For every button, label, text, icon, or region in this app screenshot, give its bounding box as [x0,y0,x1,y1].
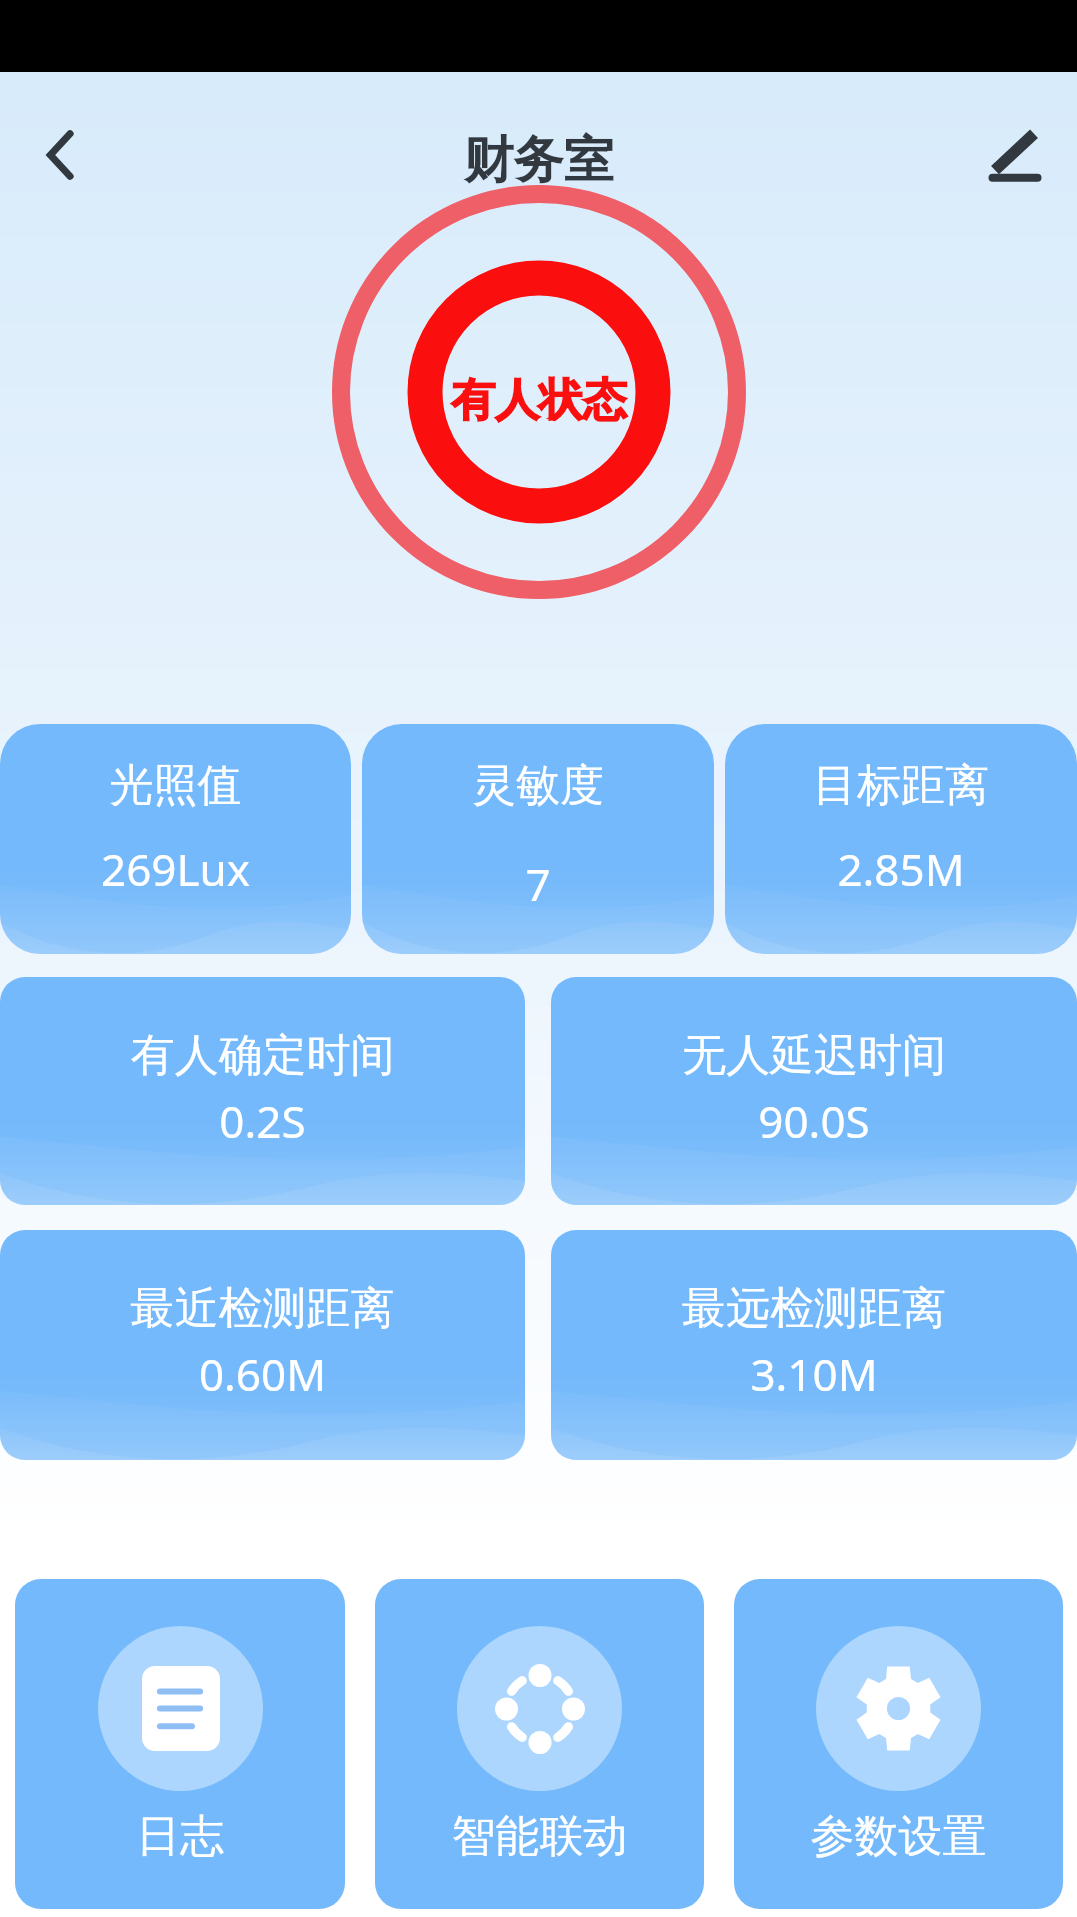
staticText: 7 [362,854,714,914]
staticText: 灵敏度 [362,758,714,813]
staticText: 目标距离 [725,758,1077,813]
staticText: 2.85M [725,839,1077,899]
button[interactable]: 光照值 [0,724,351,954]
staticText: 0.60M [0,1344,525,1404]
staticText: 智能联动 [375,1809,704,1864]
staticText: 财务室 [0,129,1077,192]
button[interactable]: 无人延迟时间 [551,977,1077,1205]
button[interactable]: 参数设置 [734,1579,1063,1909]
staticText: 3.10M [551,1344,1077,1404]
staticText: 参数设置 [734,1809,1063,1864]
button[interactable]: Edit [977,112,1053,188]
staticText: 光照值 [0,758,351,813]
button[interactable]: 目标距离 [725,724,1077,954]
staticText: 269Lux [0,839,351,899]
button[interactable]: 有人状态 [327,180,751,604]
staticText: 最远检测距离 [551,1281,1077,1336]
button[interactable]: 灵敏度 [362,724,714,954]
button[interactable]: 日志 [15,1579,345,1909]
staticText: 0.2S [0,1091,525,1151]
button[interactable]: 最近检测距离 [0,1230,525,1460]
staticText: 最近检测距离 [0,1281,525,1336]
staticText: 90.0S [551,1091,1077,1151]
staticText: 无人延迟时间 [551,1028,1077,1083]
button[interactable]: 智能联动 [375,1579,704,1909]
staticText: 日志 [15,1809,345,1864]
staticText: 有人状态 [451,373,627,428]
button[interactable]: Back [22,117,98,193]
staticText: 有人确定时间 [0,1028,525,1083]
button[interactable]: 最远检测距离 [551,1230,1077,1460]
button[interactable]: 有人确定时间 [0,977,525,1205]
